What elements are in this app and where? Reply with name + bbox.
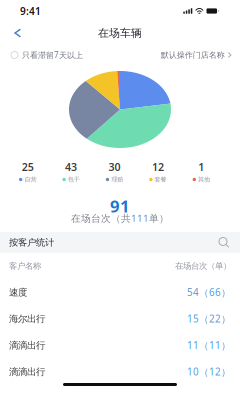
- button[interactable]: Back: [0, 22, 29, 44]
- staticText: 默认操作门店名称: [161, 50, 225, 60]
- staticText: 30: [108, 160, 120, 174]
- staticText: 其他: [198, 176, 210, 183]
- staticText: 滴滴出行: [9, 339, 45, 351]
- staticText: 在场台次（共111单）: [71, 211, 169, 225]
- button[interactable]: 默认操作门店名称: [155, 44, 240, 66]
- button[interactable]: 只看滞留7天以上: [0, 44, 89, 66]
- staticText: 套餐: [155, 176, 167, 183]
- staticText: 在场车辆: [98, 26, 142, 40]
- staticText: 9:41: [20, 4, 41, 18]
- button[interactable]: Search: [217, 232, 231, 253]
- staticText: 自营: [24, 176, 36, 183]
- button[interactable]: 速度: [0, 279, 240, 305]
- staticText: 包干: [68, 176, 80, 183]
- staticText: 1: [198, 160, 204, 174]
- staticText: 25: [22, 160, 34, 174]
- staticText: 91: [110, 195, 130, 217]
- staticText: 只看滞留7天以上: [22, 50, 83, 60]
- staticText: 理赔: [111, 176, 123, 183]
- staticText: 43: [65, 160, 77, 174]
- staticText: 在场台次（单）: [175, 261, 231, 271]
- button[interactable]: 海尔出行: [0, 305, 240, 332]
- staticText: 12: [152, 160, 164, 174]
- staticText: 滴滴出行: [9, 366, 45, 378]
- staticText: 客户名称: [9, 261, 41, 271]
- staticText: 按客户统计: [9, 237, 54, 248]
- staticText: 海尔出行: [9, 313, 45, 325]
- button[interactable]: 滴滴出行: [0, 358, 240, 385]
- staticText: 54（66）: [187, 285, 231, 299]
- staticText: 速度: [9, 286, 27, 298]
- staticText: 15（22）: [187, 312, 231, 325]
- button[interactable]: 滴滴出行: [0, 332, 240, 358]
- staticText: 10（12）: [187, 365, 231, 378]
- staticText: 11（11）: [187, 338, 231, 352]
